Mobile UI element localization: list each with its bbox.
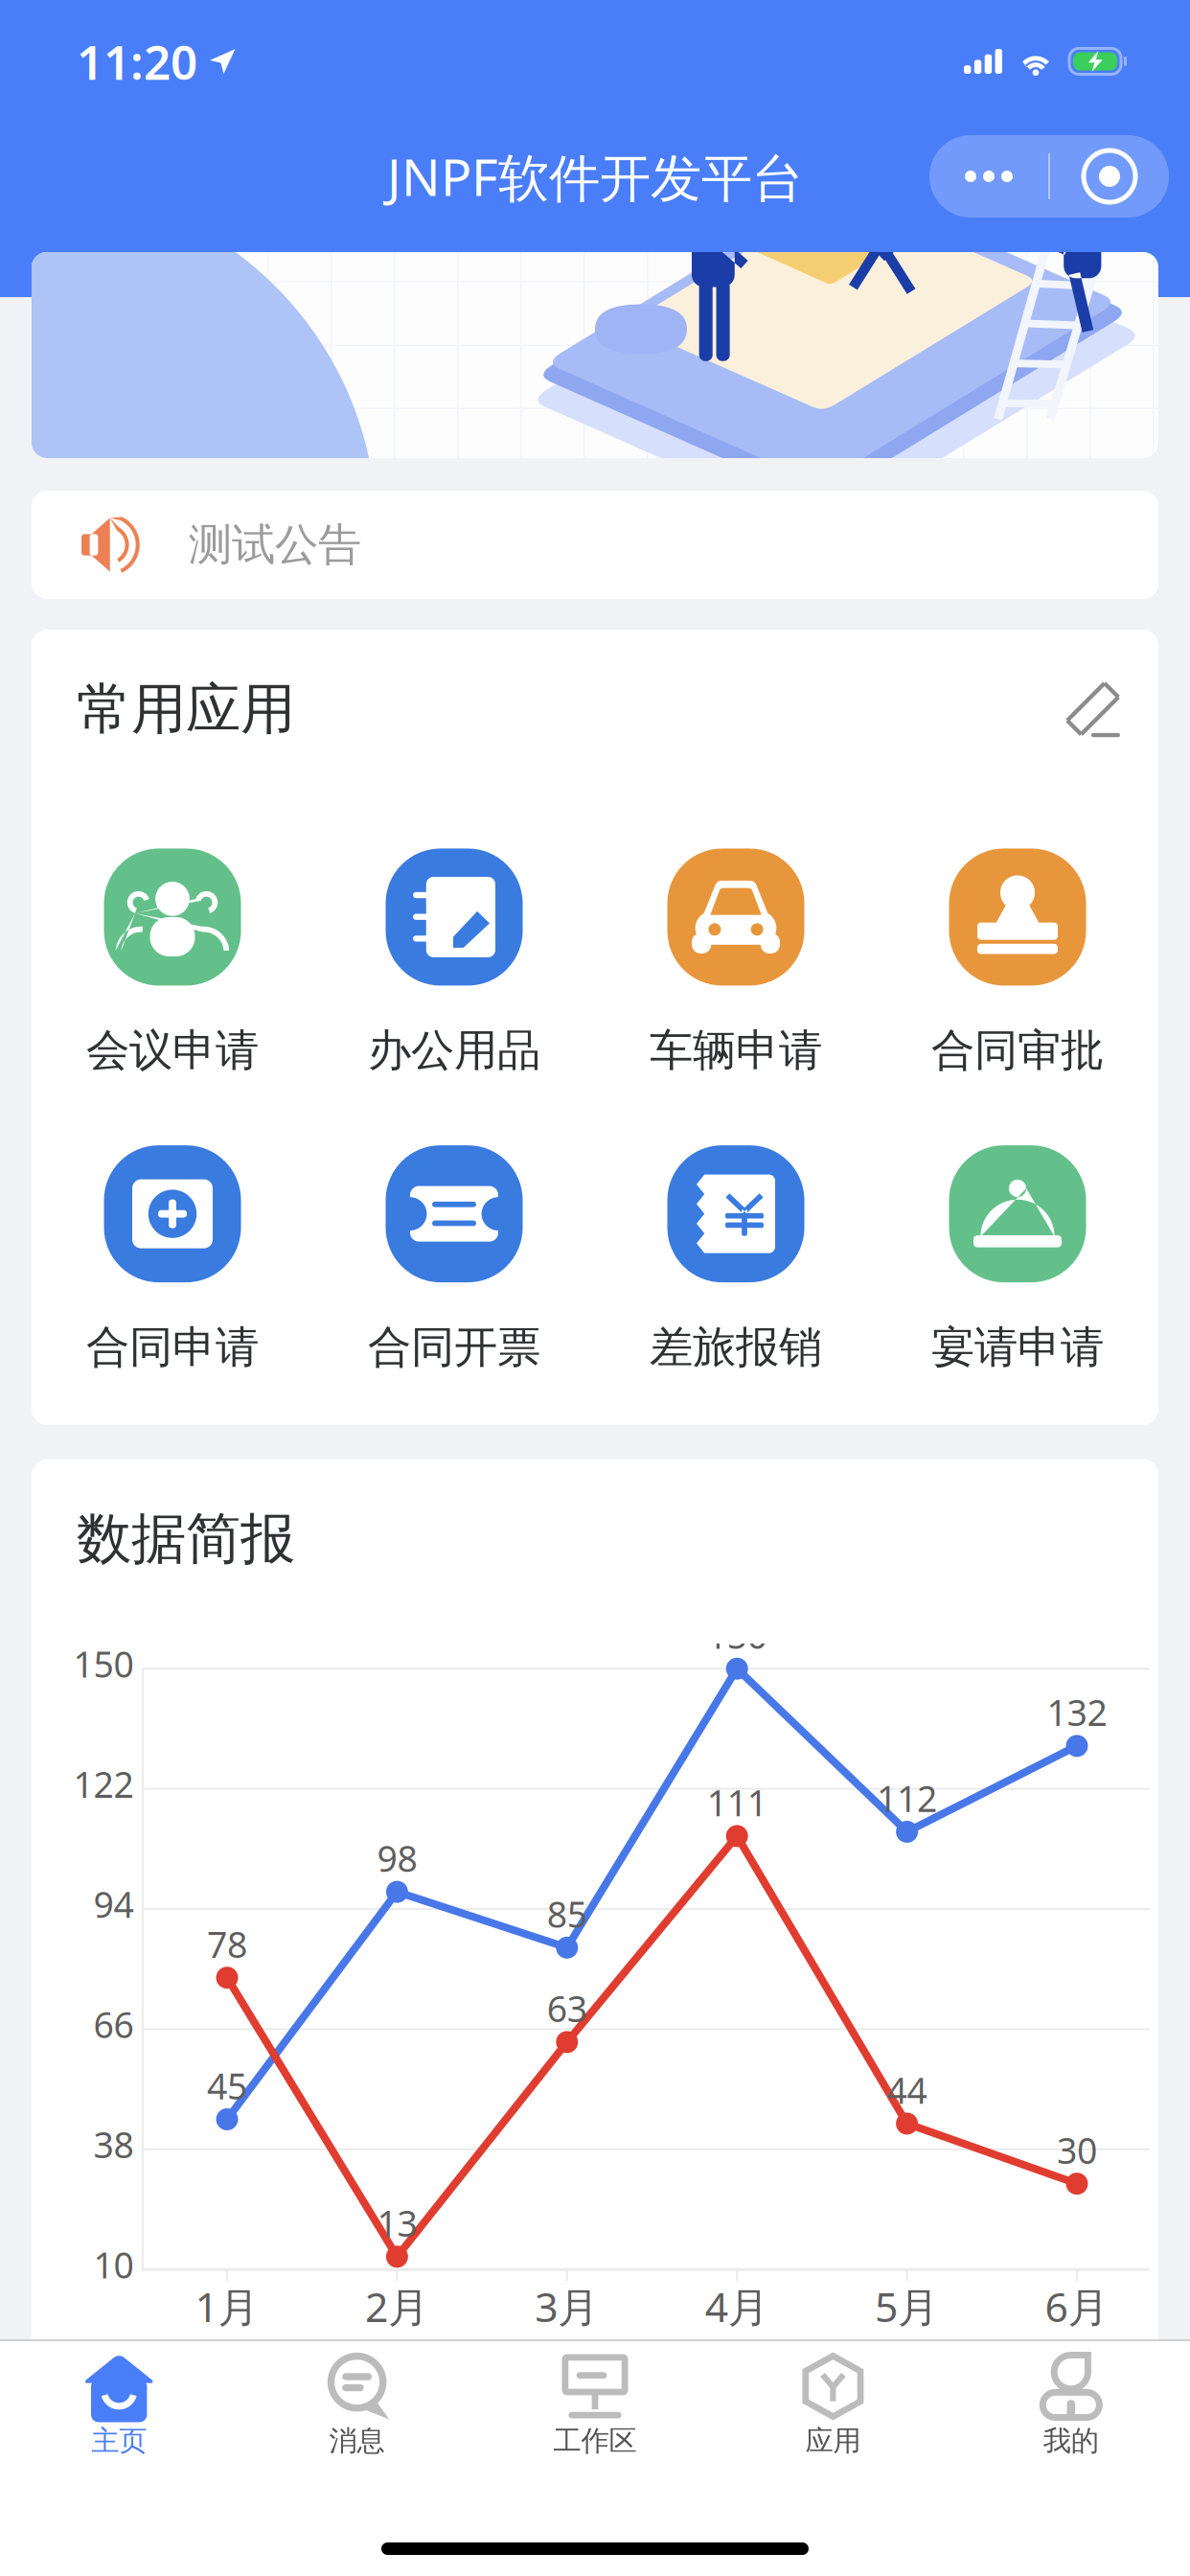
button[interactable]: 车辆申请 [595,849,877,1077]
staticText: 办公用品 [368,1024,540,1077]
staticText: 数据简报 [77,1505,295,1573]
staticText: 122 [73,1760,134,1808]
staticText: 工作区 [553,2424,637,2458]
staticText: 63 [547,1985,587,2032]
button[interactable]: 消息 [238,2351,476,2458]
staticText: 13 [377,2199,417,2247]
staticText: 合同申请 [86,1321,259,1374]
staticText: 150 [73,1640,134,1687]
button[interactable]: 办公用品 [313,849,595,1077]
staticText: 车辆申请 [650,1024,822,1077]
staticText: 30 [1057,2126,1097,2174]
staticText: 5月 [875,2279,939,2333]
staticText: 111 [707,1779,767,1826]
staticText: 78 [207,1920,247,1968]
staticText: 主页 [91,2424,147,2458]
staticText: 3月 [535,2279,599,2333]
staticText: 4月 [705,2279,769,2333]
staticText: 会议申请 [86,1024,259,1077]
staticText: 应用 [805,2424,861,2458]
staticText: 测试公告 [189,518,361,572]
staticText: 85 [547,1890,587,1938]
button[interactable]: 应用 [714,2351,952,2458]
button[interactable]: 主页 [0,2351,238,2458]
button[interactable]: Mini program menu [929,135,1169,218]
staticText: 我的 [1043,2424,1099,2458]
staticText: 10 [93,2241,134,2288]
button[interactable]: 差旅报销 [595,1145,877,1374]
staticText: 常用应用 [77,676,295,743]
staticText: JNPF软件开发平台 [387,142,803,210]
button[interactable]: 会议申请 [32,849,313,1077]
staticText: 66 [93,2000,134,2048]
button[interactable]: 合同审批 [877,849,1158,1077]
staticText: 1月 [195,2279,259,2333]
button[interactable]: 工作区 [476,2351,714,2458]
staticText: 44 [887,2066,927,2114]
staticText: 2月 [365,2279,429,2333]
staticText: 45 [207,2062,247,2109]
button[interactable]: 合同开票 [313,1145,595,1374]
staticText: 38 [93,2121,134,2168]
button[interactable]: 测试公告 [32,491,1158,599]
staticText: 112 [877,1774,937,1822]
staticText: 宴请申请 [931,1321,1104,1374]
staticText: 98 [377,1834,417,1882]
staticText: 合同开票 [368,1321,540,1374]
button[interactable]: Edit apps [1064,682,1120,737]
staticText: 合同审批 [931,1024,1104,1077]
button[interactable]: 合同申请 [32,1145,313,1374]
staticText: 94 [93,1880,134,1928]
staticText: 132 [1047,1688,1107,1736]
staticText: 11:20 [77,30,197,93]
staticText: 差旅报销 [650,1321,822,1374]
staticText: 消息 [329,2424,385,2458]
staticText: 150 [707,1611,767,1659]
staticText: 6月 [1045,2279,1109,2333]
button[interactable]: 宴请申请 [877,1145,1158,1374]
button[interactable]: 我的 [952,2351,1190,2458]
